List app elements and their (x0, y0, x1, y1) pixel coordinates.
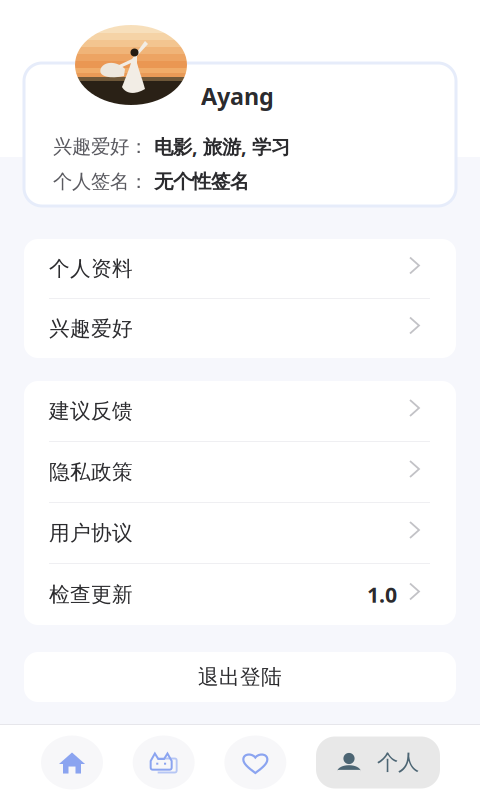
staticText: 退出登陆 (198, 664, 282, 690)
staticText: 兴趣爱好： (53, 135, 154, 158)
staticText: 检查更新 (49, 582, 133, 607)
button[interactable]: Favorites (224, 735, 286, 789)
button[interactable]: Home (41, 735, 103, 789)
staticText: 1.0 (367, 580, 397, 609)
button[interactable]: 隐私政策 (24, 442, 456, 502)
staticText: 用户协议 (49, 520, 133, 546)
staticText: Ayang (201, 80, 274, 111)
staticText: 兴趣爱好 (49, 316, 133, 341)
button[interactable]: 兴趣爱好 (24, 299, 456, 358)
staticText: 无个性签名 (154, 170, 249, 193)
button[interactable]: 个人资料 (24, 239, 456, 298)
staticText: 个人签名： (53, 170, 154, 193)
staticText: 个人 (377, 749, 419, 776)
staticText: 个人资料 (49, 256, 133, 281)
staticText: 电影, 旅游, 学习 (154, 134, 290, 159)
button[interactable]: 建议反馈 (24, 381, 456, 441)
button[interactable]: 个人 (316, 736, 440, 788)
staticText: 隐私政策 (49, 459, 133, 485)
button[interactable]: 检查更新 (24, 564, 456, 625)
button[interactable]: Discover (133, 735, 195, 789)
button[interactable]: 退出登陆 (0, 652, 480, 702)
staticText: 建议反馈 (49, 398, 133, 424)
button[interactable]: 用户协议 (24, 503, 456, 563)
